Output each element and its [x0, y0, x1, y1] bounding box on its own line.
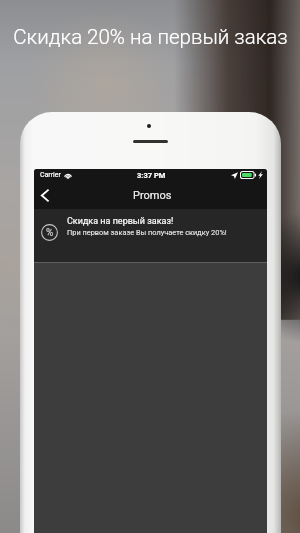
staticText: Скидка на первый заказ!: [67, 216, 174, 227]
staticText: При первом заказе Вы получаете скидку 20…: [67, 228, 227, 237]
staticText: %: [46, 227, 54, 239]
staticText: Скидка 20% на первый заказ: [13, 25, 288, 49]
staticText: 3:37 PM: [137, 171, 166, 180]
button[interactable]: Back: [34, 181, 58, 209]
button[interactable]: %: [34, 209, 267, 262]
staticText: Carrier: [40, 171, 61, 179]
staticText: Promos: [133, 189, 172, 202]
